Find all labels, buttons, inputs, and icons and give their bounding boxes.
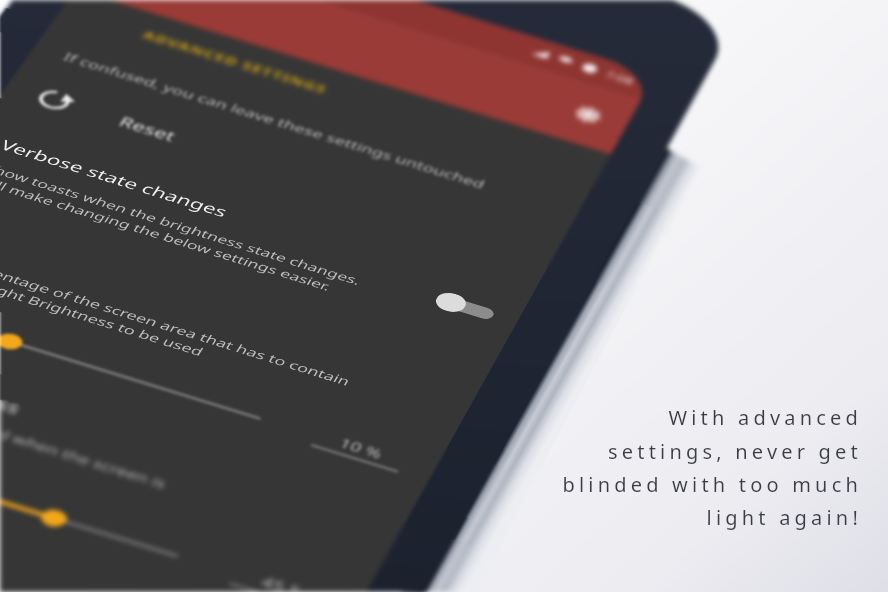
- staticText: Reset: [138, 374, 185, 399]
- staticText: Area: [66, 571, 105, 592]
- button[interactable]: Verbose state changes: [40, 423, 513, 546]
- staticText: Area: [66, 571, 105, 592]
- button[interactable]: Verbose state changes: [40, 423, 513, 546]
- button[interactable]: Settings: [461, 175, 497, 211]
- button[interactable]: Area: [40, 546, 513, 592]
- staticText: If confused, you can leave these setting…: [66, 316, 432, 336]
- staticText: Verbose state changes: [66, 448, 257, 473]
- staticText: Area: [66, 571, 105, 592]
- staticText: Verbose state changes: [66, 448, 257, 473]
- button[interactable]: Area: [40, 546, 513, 592]
- button[interactable]: Reset: [40, 349, 513, 423]
- staticText: Reset: [138, 374, 185, 399]
- button[interactable]: Area: [40, 546, 513, 592]
- staticText: Show toasts when the brightness state ch…: [66, 484, 383, 521]
- staticText: Verbose state changes: [66, 448, 257, 473]
- staticText: Show toasts when the brightness state ch…: [66, 484, 383, 521]
- staticText: With advanced settings, never get blinde…: [562, 404, 862, 531]
- button[interactable]: Reset: [40, 349, 513, 423]
- staticText: Show toasts when the brightness state ch…: [66, 484, 383, 521]
- staticText: If confused, you can leave these setting…: [66, 316, 432, 336]
- button[interactable]: Settings: [461, 175, 497, 211]
- staticText: ADVANCED SETTINGS: [112, 257, 273, 276]
- staticText: If confused, you can leave these setting…: [66, 316, 432, 336]
- button[interactable]: Verbose state changes: [40, 423, 513, 546]
- button[interactable]: Verbose state changes: [40, 423, 513, 546]
- button[interactable]: Area: [40, 546, 513, 592]
- staticText: Show toasts when the brightness state ch…: [66, 484, 383, 521]
- button[interactable]: Reset: [40, 349, 513, 423]
- staticText: Verbose state changes: [66, 448, 257, 473]
- button[interactable]: Settings: [461, 175, 497, 211]
- staticText: If confused, you can leave these setting…: [66, 316, 432, 336]
- staticText: ADVANCED SETTINGS: [112, 257, 273, 276]
- button[interactable]: Reset: [40, 349, 513, 423]
- staticText: Verbose state changes: [66, 448, 257, 473]
- staticText: Show toasts when the brightness state ch…: [66, 484, 383, 521]
- button[interactable]: Verbose state changes: [40, 423, 513, 546]
- button[interactable]: Settings: [461, 175, 497, 211]
- staticText: Reset: [138, 374, 185, 399]
- staticText: ADVANCED SETTINGS: [112, 257, 273, 276]
- staticText: Area: [66, 571, 105, 592]
- staticText: ADVANCED SETTINGS: [112, 257, 273, 276]
- staticText: Area: [66, 571, 105, 592]
- button[interactable]: Reset: [40, 349, 513, 423]
- button[interactable]: Area: [40, 546, 513, 592]
- staticText: Reset: [138, 374, 185, 399]
- staticText: Reset: [138, 374, 185, 399]
- staticText: ADVANCED SETTINGS: [112, 257, 273, 276]
- staticText: If confused, you can leave these setting…: [66, 316, 432, 336]
- button[interactable]: Settings: [461, 175, 497, 211]
